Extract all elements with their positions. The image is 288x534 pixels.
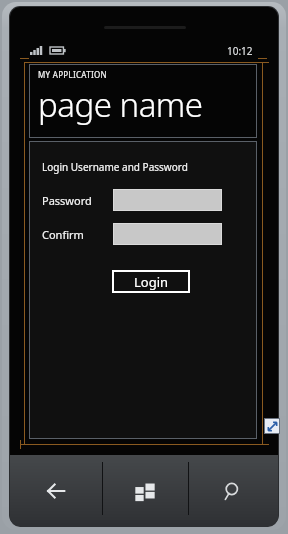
button[interactable]: Start [102, 455, 188, 527]
staticText: MY APPLICATION [38, 69, 107, 80]
staticText: Confirm [42, 227, 84, 242]
button[interactable]: Back [10, 455, 102, 527]
button[interactable]: Search [188, 455, 278, 527]
staticText: Login [134, 273, 169, 291]
button[interactable]: Login [112, 270, 190, 293]
staticText: Password [42, 193, 92, 208]
button[interactable]: Resize [264, 418, 280, 434]
staticText: 10:12 [227, 44, 253, 58]
staticText: Login Username and Password [42, 160, 188, 174]
staticText: page name [38, 82, 203, 127]
